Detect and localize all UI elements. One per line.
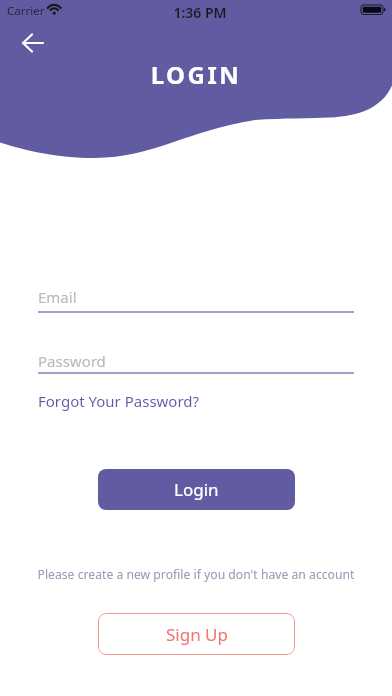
staticText: Carrier (7, 3, 45, 19)
staticText: Password (38, 351, 106, 371)
staticText: 1:36 PM (4, 3, 392, 22)
staticText: Please create a new profile if you don't… (0, 566, 392, 583)
button[interactable] (38, 347, 354, 377)
button[interactable] (38, 283, 354, 313)
staticText: Email (38, 287, 77, 307)
staticText: Login (174, 478, 219, 501)
button[interactable]: Forgot Your Password? (38, 391, 200, 411)
button[interactable]: Sign Up (98, 613, 295, 655)
staticText: Sign Up (166, 623, 228, 646)
staticText: LOGIN (0, 58, 392, 91)
button[interactable] (14, 26, 52, 60)
button[interactable]: Login (98, 469, 295, 510)
